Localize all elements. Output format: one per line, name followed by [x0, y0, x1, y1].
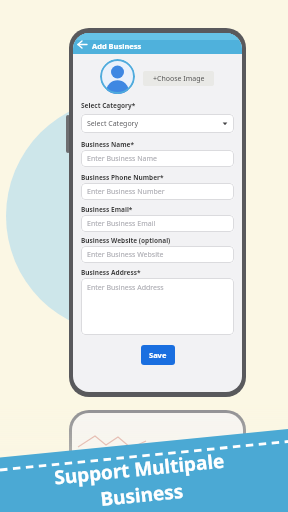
- button[interactable]: Enter Business Address: [81, 278, 234, 335]
- staticText: Save: [149, 350, 167, 360]
- staticText: Support Multipale: [53, 448, 225, 490]
- staticText: Business Email*: [81, 205, 133, 214]
- staticText: Select Category*: [81, 101, 136, 110]
- button[interactable]: Enter Business Name: [81, 150, 234, 167]
- staticText: Business Website (optional): [81, 236, 171, 245]
- button[interactable]: Enter Business Website: [81, 246, 234, 263]
- staticText: Enter Business Email: [87, 219, 156, 229]
- staticText: Business Name*: [81, 140, 134, 149]
- button[interactable]: Enter Business Number: [81, 183, 234, 200]
- staticText: Select Category: [87, 119, 139, 129]
- button[interactable]: Support Multipale: [0, 442, 286, 512]
- button[interactable]: Add Business: [73, 33, 242, 54]
- staticText: Business Address*: [81, 268, 141, 277]
- button[interactable]: Enter Business Email: [81, 215, 234, 232]
- staticText: Enter Business Address: [87, 283, 164, 293]
- button[interactable]: [100, 59, 135, 94]
- staticText: Add Business: [92, 41, 142, 51]
- staticText: +Choose Image: [153, 74, 205, 84]
- staticText: Enter Business Website: [87, 250, 164, 260]
- staticText: Business Phone Number*: [81, 173, 164, 182]
- button[interactable]: Save: [141, 345, 175, 365]
- staticText: Business: [99, 478, 184, 512]
- staticText: Enter Business Number: [87, 187, 165, 197]
- button[interactable]: Select Category: [81, 114, 234, 133]
- staticText: Enter Business Name: [87, 154, 157, 164]
- button[interactable]: +Choose Image: [143, 71, 214, 86]
